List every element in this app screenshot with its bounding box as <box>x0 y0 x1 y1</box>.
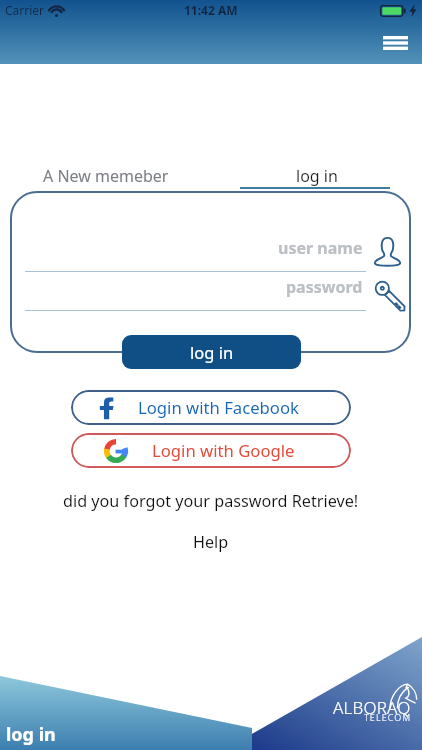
staticText: ALBORAQ <box>333 696 411 719</box>
button[interactable]: Login with Google <box>71 433 351 468</box>
staticText: log in <box>6 722 56 747</box>
staticText: A New memeber <box>43 165 169 187</box>
button[interactable]: A New memeber <box>0 160 211 192</box>
staticText: 11:42 AM <box>184 2 238 18</box>
button[interactable]: log in <box>211 160 422 192</box>
staticText: log in <box>296 165 338 187</box>
staticText: log in <box>190 341 234 363</box>
staticText: user name <box>278 237 363 259</box>
staticText: Carrier <box>5 2 45 18</box>
staticText: Login with Google <box>152 439 295 462</box>
staticText: Login with Facebook <box>138 396 299 419</box>
staticText: Help <box>193 531 229 553</box>
button[interactable]: Help <box>0 531 422 553</box>
staticText: did you forgot your password Retrieve! <box>63 490 359 512</box>
button[interactable]: log in <box>122 335 301 369</box>
button[interactable]: did you forgot your password Retrieve! <box>0 490 422 512</box>
staticText: password <box>286 276 363 298</box>
button[interactable]: Login with Facebook <box>71 390 351 425</box>
button[interactable]: Menu <box>377 30 414 56</box>
staticText: TELECOM <box>364 711 412 723</box>
